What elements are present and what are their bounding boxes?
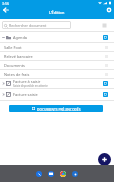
staticText: Facture à saisir (13, 79, 41, 84)
button[interactable]: Scan document (103, 35, 108, 40)
staticText: Saisie disponible en attente (13, 84, 48, 88)
button[interactable]: Add (98, 153, 111, 166)
button[interactable]: Back (0, 4, 11, 15)
staticText: Salle Foot (4, 45, 22, 50)
staticText: Agenda (13, 35, 28, 40)
button[interactable]: Documents (0, 61, 114, 69)
button[interactable]: Agenda (0, 32, 114, 42)
button[interactable]: Phone (36, 171, 42, 177)
staticText: Facture saisie (13, 92, 38, 97)
button[interactable]: Facture à saisir (0, 79, 114, 88)
staticText: Notes de frais (4, 72, 30, 77)
button[interactable]: Salle Foot (0, 43, 114, 51)
staticText: Rechercher document (9, 23, 47, 28)
staticText: Relevé bancaire (4, 54, 33, 59)
button[interactable]: Notes de frais (0, 70, 114, 78)
button[interactable]: Chrome (60, 171, 66, 177)
button[interactable]: Camera (72, 171, 78, 177)
button[interactable]: Scan document (103, 81, 108, 86)
button[interactable]: Relevé bancaire (0, 52, 114, 60)
staticText: DOCUMENTS PRÉ-ENCODÉS (37, 107, 81, 111)
button[interactable]: DOCUMENTS PRÉ-ENCODÉS (9, 105, 103, 112)
staticText: 3:56 (2, 1, 10, 6)
button[interactable]: Messages (48, 171, 54, 177)
button[interactable]: Scan document (103, 92, 108, 97)
button[interactable]: Account (103, 4, 114, 15)
button[interactable]: Facture saisie (0, 89, 114, 100)
button[interactable]: Rechercher document (2, 21, 71, 29)
staticText: Documents (4, 63, 25, 68)
staticText: L'Édition (49, 10, 65, 15)
